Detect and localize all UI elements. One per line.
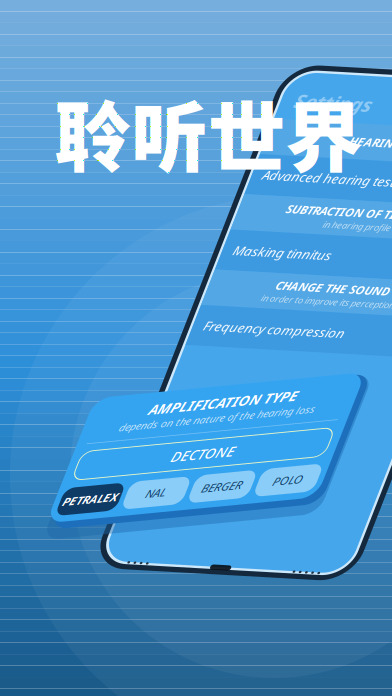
- staticText: DECTONE: [367, 519, 392, 539]
- staticText: Advanced hearing test: [325, 159, 392, 177]
- staticText: in order to improve its perception: [370, 291, 392, 304]
- staticText: Masking tinnitus: [325, 240, 392, 258]
- staticText: SUBTRACTION OF TINNITUS: [361, 194, 392, 210]
- staticText: CHANGE THE SOUND: [380, 275, 392, 291]
- staticText: depends on the nature of the hearing los…: [300, 483, 392, 498]
- staticText: AMPLIFICATION TYPE: [324, 464, 392, 483]
- staticText: NAL: [355, 559, 376, 575]
- staticText: PETRALEX: [272, 559, 327, 575]
- staticText: Frequency compression: [325, 321, 392, 339]
- staticText: 聆听世界: [54, 76, 362, 188]
- staticText: Settings: [328, 75, 392, 102]
